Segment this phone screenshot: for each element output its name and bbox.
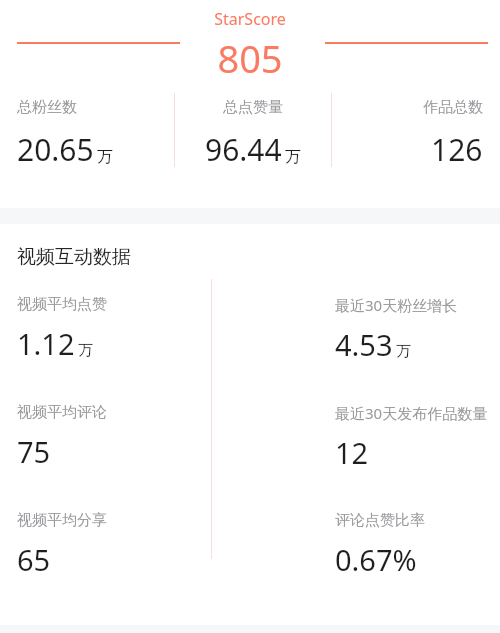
button[interactable]: 最近30天发布作品数量 xyxy=(335,403,500,472)
staticText: 12 xyxy=(335,433,369,472)
staticText: 视频平均分享 xyxy=(17,511,107,530)
staticText: 万 xyxy=(97,147,113,167)
staticText: 万 xyxy=(396,342,411,361)
button[interactable]: 视频平均点赞 xyxy=(17,295,250,363)
staticText: StarScore xyxy=(214,8,286,30)
staticText: 20.65 xyxy=(17,129,94,170)
button[interactable]: 评论点赞比率 xyxy=(335,511,500,579)
staticText: 万 xyxy=(285,147,301,167)
staticText: 1.12 xyxy=(17,324,75,363)
staticText: 65 xyxy=(17,540,51,579)
staticText: 805 xyxy=(217,32,283,84)
staticText: 万 xyxy=(78,341,93,360)
staticText: 4.53 xyxy=(335,325,393,364)
button[interactable]: 作品总数 xyxy=(331,98,483,170)
button[interactable]: 视频平均评论 xyxy=(17,403,250,471)
staticText: 视频平均评论 xyxy=(17,403,107,422)
staticText: 最近30天粉丝增长 xyxy=(335,295,458,315)
staticText: 作品总数 xyxy=(423,98,483,117)
staticText: 视频互动数据 xyxy=(17,245,131,269)
button[interactable]: 总粉丝数 xyxy=(17,98,174,170)
staticText: 最近30天发布作品数量 xyxy=(335,403,488,423)
staticText: 75 xyxy=(17,432,51,471)
staticText: 总点赞量 xyxy=(223,98,283,117)
button[interactable]: 最近30天粉丝增长 xyxy=(335,295,500,364)
staticText: 0.67% xyxy=(335,540,417,579)
button[interactable]: 视频平均分享 xyxy=(17,511,250,579)
staticText: 评论点赞比率 xyxy=(335,511,425,530)
staticText: 总粉丝数 xyxy=(17,98,77,117)
button[interactable]: 总点赞量 xyxy=(174,98,331,170)
staticText: 96.44 xyxy=(205,129,282,170)
staticText: 126 xyxy=(431,129,483,170)
staticText: 视频平均点赞 xyxy=(17,295,107,314)
